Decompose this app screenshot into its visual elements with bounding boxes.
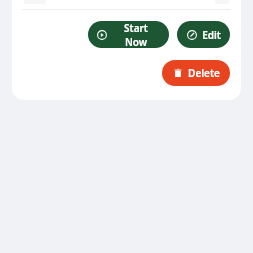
staticText: Delete xyxy=(188,66,220,80)
button[interactable]: Delete xyxy=(162,60,230,86)
button[interactable]: Edit xyxy=(177,21,230,48)
staticText: Start Now xyxy=(112,21,160,48)
staticText: Edit xyxy=(202,28,221,42)
button[interactable]: Start Now xyxy=(88,21,169,48)
